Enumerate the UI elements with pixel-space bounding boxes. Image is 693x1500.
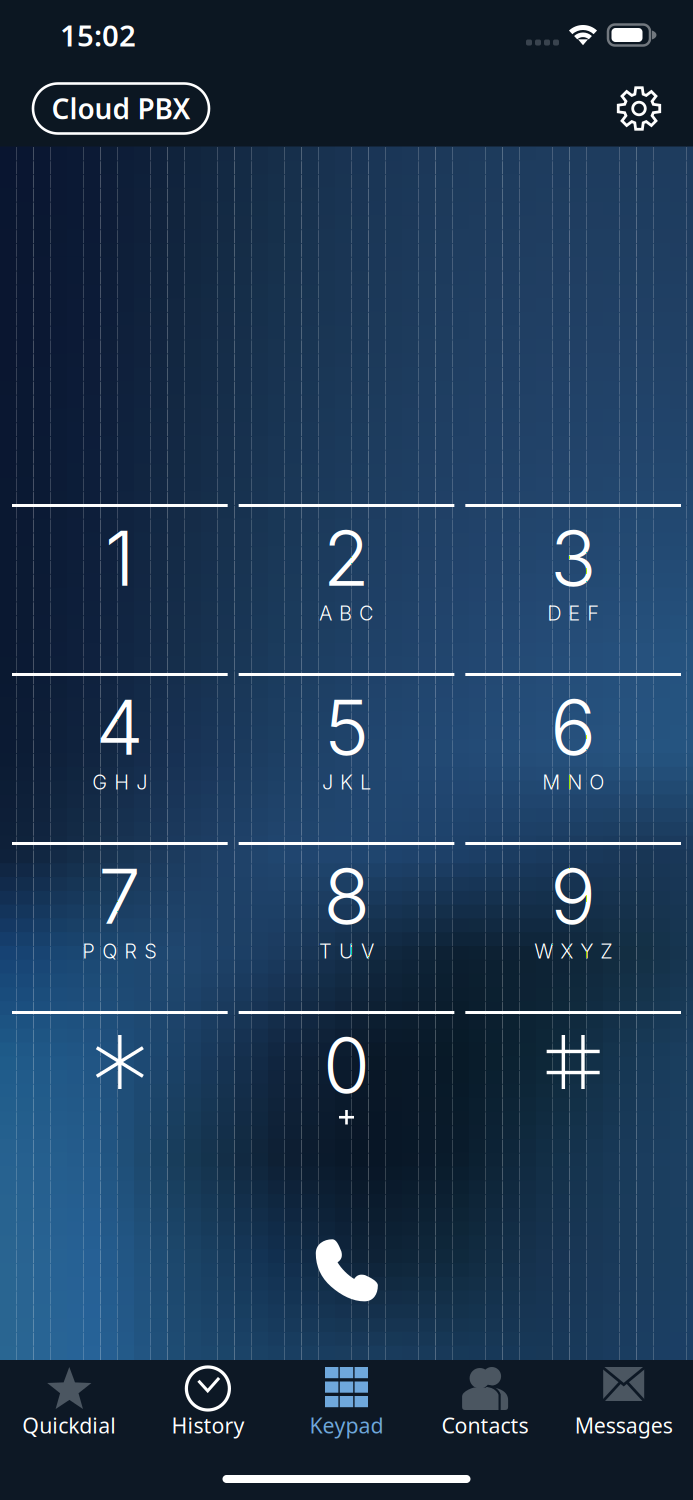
- staticText: Messages: [575, 1411, 673, 1439]
- staticText: 15:02: [60, 15, 136, 54]
- staticText: 1: [105, 512, 135, 604]
- button[interactable]: History: [139, 1360, 277, 1500]
- staticText: JKL: [322, 770, 371, 794]
- button[interactable]: [465, 1011, 681, 1180]
- staticText: DEF: [547, 601, 599, 625]
- button[interactable]: 4: [12, 673, 228, 842]
- staticText: TUV: [319, 939, 374, 963]
- staticText: Keypad: [309, 1411, 383, 1439]
- button[interactable]: 9: [465, 842, 681, 1011]
- button[interactable]: 6: [465, 673, 681, 842]
- button[interactable]: 3: [465, 504, 681, 673]
- button[interactable]: 0: [239, 1011, 454, 1180]
- staticText: History: [171, 1411, 244, 1439]
- button[interactable]: Cloud PBX: [33, 83, 209, 133]
- button[interactable]: Settings: [611, 80, 667, 136]
- button[interactable]: 5: [239, 673, 454, 842]
- staticText: GHJ: [92, 770, 147, 794]
- staticText: WXYZ: [534, 939, 612, 963]
- staticText: Cloud PBX: [51, 90, 190, 127]
- staticText: 0: [323, 1019, 370, 1111]
- button[interactable]: 8: [239, 842, 454, 1011]
- staticText: 5: [324, 681, 369, 773]
- staticText: 7: [98, 850, 141, 942]
- button[interactable]: [12, 1011, 228, 1180]
- staticText: 4: [96, 681, 144, 773]
- staticText: 9: [550, 850, 596, 942]
- staticText: 8: [323, 850, 369, 942]
- staticText: 2: [323, 512, 370, 604]
- button[interactable]: Keypad: [277, 1360, 416, 1500]
- button[interactable]: 7: [12, 842, 228, 1011]
- button[interactable]: 1: [12, 504, 228, 673]
- button[interactable]: Call: [291, 1215, 401, 1325]
- button[interactable]: 2: [239, 504, 454, 673]
- staticText: MNO: [542, 770, 604, 794]
- staticText: 6: [550, 681, 596, 773]
- button[interactable]: Quickdial: [0, 1360, 139, 1500]
- staticText: ABC: [319, 601, 374, 625]
- staticText: 3: [550, 512, 596, 604]
- button[interactable]: Contacts: [416, 1360, 554, 1500]
- button[interactable]: Messages: [554, 1360, 693, 1500]
- staticText: PQRS: [82, 939, 157, 963]
- staticText: Contacts: [442, 1411, 529, 1439]
- staticText: Quickdial: [22, 1411, 116, 1439]
